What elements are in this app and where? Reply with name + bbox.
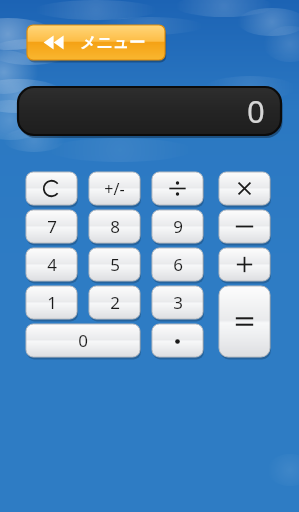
button[interactable]: Multiply (219, 172, 270, 205)
button[interactable]: 4 (26, 248, 77, 281)
button[interactable]: Decimal point (152, 324, 203, 357)
staticText: 0 (247, 90, 265, 132)
button[interactable]: 3 (152, 286, 203, 319)
button[interactable]: 7 (26, 210, 77, 243)
button[interactable]: Divide (152, 172, 203, 205)
button[interactable]: Plus (219, 248, 270, 281)
button[interactable]: Clear (26, 172, 77, 205)
button[interactable]: Equals (219, 286, 270, 357)
button[interactable]: 2 (89, 286, 140, 319)
staticText: +/- (104, 178, 125, 200)
staticText: 2 (110, 291, 120, 314)
button[interactable]: 1 (26, 286, 77, 319)
button[interactable]: 8 (89, 210, 140, 243)
staticText: 8 (110, 215, 120, 238)
staticText: 0 (78, 329, 88, 352)
staticText: 9 (173, 215, 183, 238)
staticText: 7 (47, 215, 57, 238)
staticText: 6 (173, 253, 183, 276)
staticText: 3 (173, 291, 183, 314)
button[interactable]: 9 (152, 210, 203, 243)
button[interactable]: 5 (89, 248, 140, 281)
staticText: 5 (110, 253, 120, 276)
button[interactable]: 0 (26, 324, 140, 357)
staticText: メニュー (80, 33, 146, 53)
button[interactable]: 6 (152, 248, 203, 281)
staticText: 1 (47, 291, 57, 314)
button[interactable]: メニュー (27, 25, 165, 60)
button[interactable]: +/- (89, 172, 140, 205)
button[interactable]: Minus (219, 210, 270, 243)
staticText: 4 (47, 253, 57, 276)
